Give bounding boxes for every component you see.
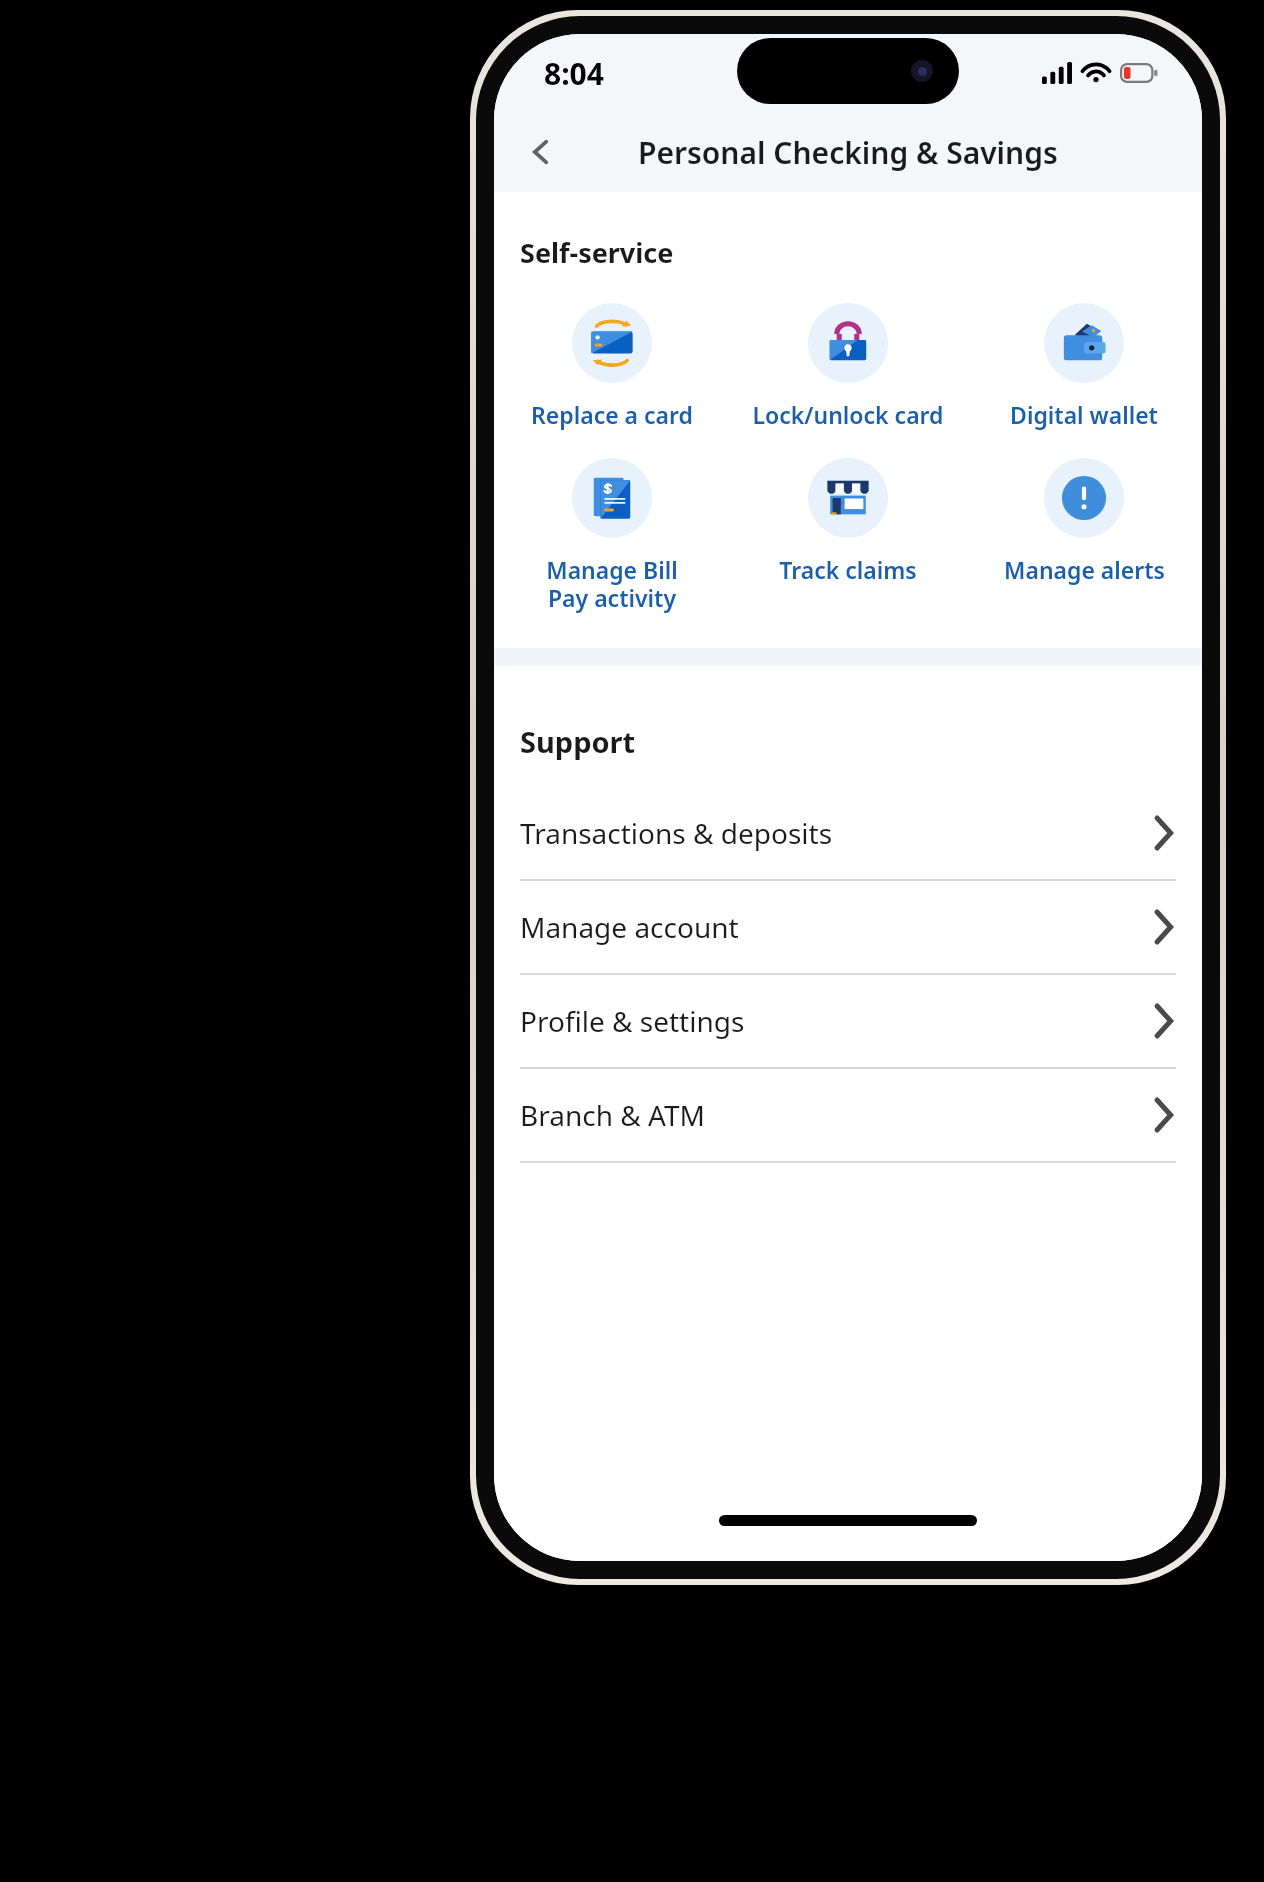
staticText: Digital wallet bbox=[1010, 399, 1158, 430]
button[interactable]: Manage alerts bbox=[966, 452, 1202, 591]
staticText: Track claims bbox=[779, 554, 917, 585]
button[interactable]: Transactions & deposits bbox=[494, 787, 1202, 881]
staticText: Support bbox=[520, 722, 636, 761]
staticText: Profile & settings bbox=[520, 1002, 745, 1040]
staticText: Manage account bbox=[520, 908, 739, 946]
staticText: Manage alerts bbox=[1004, 554, 1165, 585]
button[interactable]: Lock/unlock card bbox=[730, 297, 966, 436]
button[interactable]: Track claims bbox=[730, 452, 966, 591]
staticText: Replace a card bbox=[531, 399, 693, 430]
staticText: Branch & ATM bbox=[520, 1096, 705, 1134]
staticText: 8:04 bbox=[544, 53, 604, 94]
staticText: Personal Checking & Savings bbox=[638, 132, 1058, 173]
button[interactable]: Branch & ATM bbox=[494, 1069, 1202, 1163]
button[interactable]: Manage account bbox=[494, 881, 1202, 975]
staticText: Transactions & deposits bbox=[520, 814, 833, 852]
button[interactable]: Profile & settings bbox=[494, 975, 1202, 1069]
staticText: Lock/unlock card bbox=[752, 399, 944, 430]
button[interactable]: Replace a card bbox=[494, 297, 730, 436]
button[interactable]: Manage Bill Pay activity bbox=[494, 452, 730, 620]
staticText: Self-service bbox=[520, 234, 674, 271]
staticText: Manage Bill Pay activity bbox=[546, 554, 678, 614]
button[interactable]: Back bbox=[512, 123, 570, 181]
button[interactable]: Digital wallet bbox=[966, 297, 1202, 436]
